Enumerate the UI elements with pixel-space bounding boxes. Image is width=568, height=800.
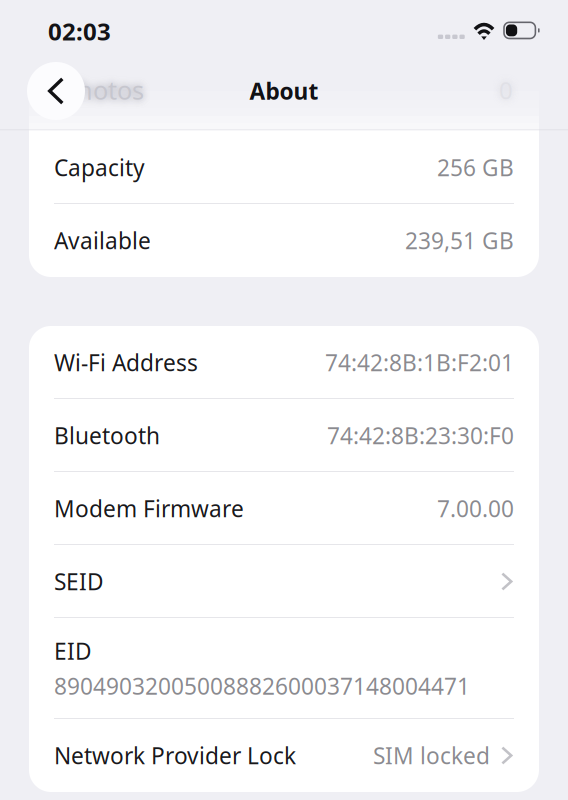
staticText: Photos — [62, 73, 144, 107]
staticText: Available — [54, 225, 151, 255]
staticText: SIM locked — [373, 740, 490, 770]
staticText: 74:42:8B:23:30:F0 — [327, 420, 514, 450]
staticText: Capacity — [54, 152, 145, 182]
staticText: Bluetooth — [54, 420, 160, 450]
button[interactable]: Capacity — [29, 131, 539, 204]
staticText: Network Provider Lock — [54, 740, 296, 770]
button[interactable]: Network Provider Lock — [29, 719, 539, 792]
staticText: 74:42:8B:1B:F2:01 — [325, 347, 514, 377]
staticText: EID — [54, 636, 92, 666]
staticText: SEID — [54, 566, 104, 596]
staticText: 256 GB — [437, 152, 514, 182]
staticText: 7.00.00 — [437, 493, 514, 523]
button[interactable]: Wi-Fi Address — [29, 326, 539, 399]
button[interactable]: SEID — [29, 545, 539, 618]
button[interactable]: EID — [29, 618, 539, 719]
staticText: Modem Firmware — [54, 493, 244, 523]
staticText: 239,51 GB — [405, 225, 514, 255]
staticText: Wi-Fi Address — [54, 347, 198, 377]
button[interactable]: Available — [29, 204, 539, 277]
button[interactable]: Bluetooth — [29, 399, 539, 472]
staticText: 89049032005008882600037148004471 — [54, 671, 470, 701]
button[interactable]: Back — [27, 62, 85, 120]
staticText: 02:03 — [48, 15, 111, 47]
button[interactable]: Modem Firmware — [29, 472, 539, 545]
staticText: About — [249, 76, 318, 106]
staticText: 0 — [499, 74, 513, 106]
